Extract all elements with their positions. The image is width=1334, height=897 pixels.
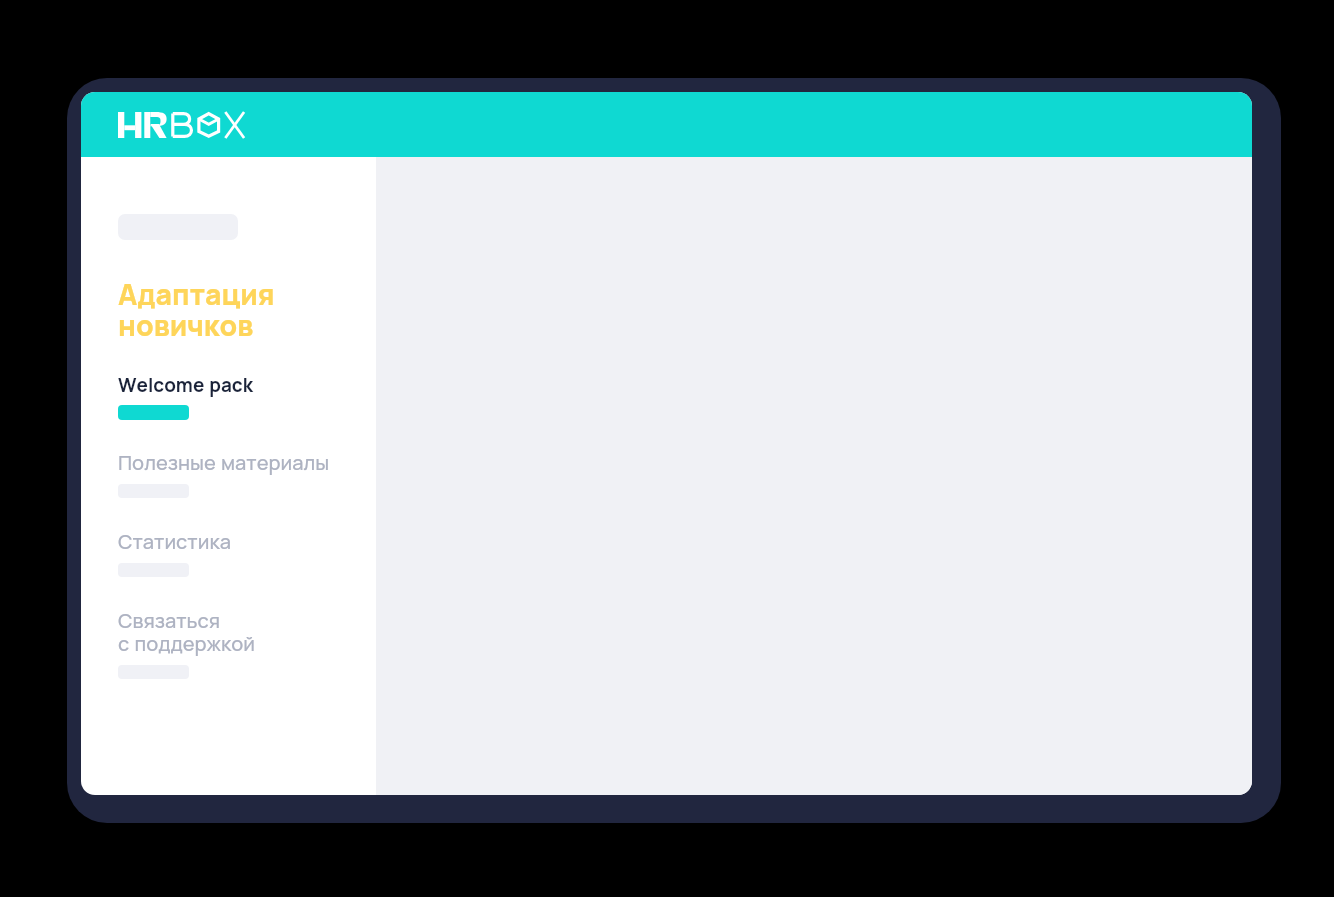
button[interactable]: Полезные материалы	[81, 449, 376, 498]
staticText: новичков	[118, 306, 254, 345]
staticText: с поддержкой	[118, 630, 256, 657]
staticText: Полезные материалы	[118, 449, 330, 476]
button[interactable]: Связаться	[81, 607, 376, 679]
button[interactable]: Статистика	[81, 528, 376, 577]
staticText: Welcome pack	[118, 372, 253, 398]
staticText: Связаться	[118, 607, 221, 634]
staticText: Статистика	[118, 528, 231, 555]
other: HRBOX logo	[118, 112, 247, 138]
staticText: Адаптация	[118, 275, 275, 314]
button[interactable]: Welcome pack	[81, 372, 376, 424]
